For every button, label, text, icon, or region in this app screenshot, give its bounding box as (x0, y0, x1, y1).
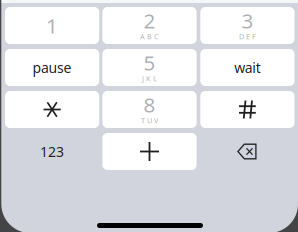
staticText: pause (33, 58, 72, 77)
staticText: 2 (143, 6, 155, 34)
staticText: wait (234, 58, 261, 77)
button[interactable]: pause (5, 49, 99, 86)
staticText: ABC (140, 31, 159, 41)
staticText: 8 (143, 90, 155, 118)
button[interactable]: 3 (200, 7, 294, 44)
staticText: 3 (241, 6, 253, 34)
staticText: 123 (40, 142, 64, 161)
staticText: DEF (239, 31, 256, 41)
button[interactable]: 2 (102, 7, 197, 44)
staticText: JKL (142, 73, 157, 83)
button[interactable]: 123 (5, 133, 99, 170)
button[interactable]: 1 (5, 7, 99, 44)
staticText: TUV (141, 115, 158, 125)
staticText: 5 (143, 48, 155, 76)
button[interactable]: 5 (102, 49, 197, 86)
button[interactable]: 8 (102, 91, 197, 128)
button[interactable]: Delete (200, 133, 294, 170)
button[interactable]: Asterisk (5, 91, 99, 128)
button[interactable]: Plus (102, 133, 197, 170)
button[interactable]: wait (200, 49, 294, 86)
button[interactable]: Number sign (200, 91, 294, 128)
staticText: 1 (46, 11, 58, 39)
